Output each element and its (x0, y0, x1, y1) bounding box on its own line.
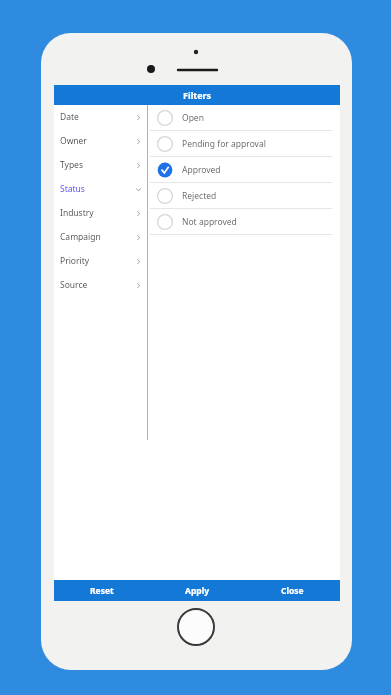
staticText: Campaign (60, 231, 101, 243)
staticText: Status (60, 183, 85, 195)
button[interactable]: Rejected (148, 183, 340, 208)
button[interactable]: Open (148, 105, 340, 130)
button[interactable]: Status (54, 177, 147, 201)
button[interactable]: Industry (54, 201, 147, 225)
staticText: Rejected (182, 190, 217, 202)
staticText: Pending for approval (182, 138, 266, 150)
staticText: Priority (60, 255, 90, 267)
button[interactable]: Owner (54, 129, 147, 153)
button[interactable]: Close (245, 580, 340, 601)
button[interactable]: Pending for approval (148, 131, 340, 156)
button[interactable]: Priority (54, 249, 147, 273)
staticText: Industry (60, 207, 94, 219)
staticText: Owner (60, 135, 87, 147)
staticText: Filters (183, 89, 212, 101)
button[interactable]: Not approved (148, 209, 340, 234)
staticText: Open (182, 112, 204, 124)
staticText: Close (281, 585, 304, 597)
button[interactable]: Types (54, 153, 147, 177)
staticText: Not approved (182, 216, 237, 228)
staticText: Reset (90, 585, 114, 597)
button[interactable]: Date (54, 105, 147, 129)
staticText: Apply (185, 585, 210, 597)
button[interactable]: Apply (150, 580, 245, 601)
staticText: Approved (182, 164, 221, 176)
staticText: Date (60, 111, 79, 123)
button[interactable]: Campaign (54, 225, 147, 249)
button[interactable]: Reset (54, 580, 150, 601)
staticText: Source (60, 279, 88, 291)
button[interactable]: Source (54, 273, 147, 297)
button[interactable]: Approved (148, 157, 340, 182)
staticText: Types (60, 159, 83, 171)
